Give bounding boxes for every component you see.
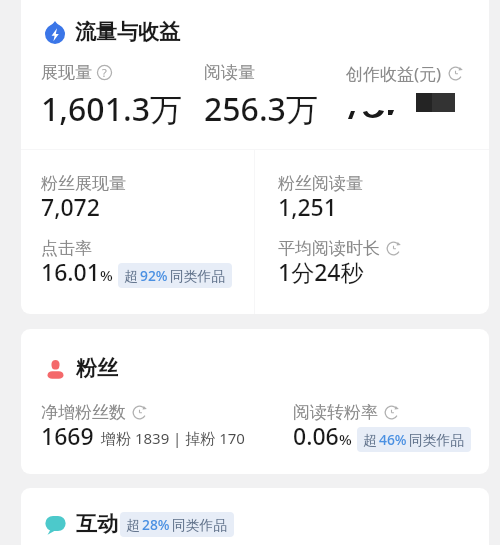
staticText: 超 28% 同类作品 xyxy=(126,515,228,534)
staticText: 净增粉丝数 xyxy=(41,402,126,423)
staticText: 超 92% 同类作品 xyxy=(124,266,226,285)
staticText: 互动 xyxy=(76,511,118,537)
button[interactable]: 超 28% 同类作品 xyxy=(120,512,234,537)
other: 刷新 xyxy=(384,405,399,420)
staticText: 0.06 xyxy=(293,420,339,451)
staticText: 超 46% 同类作品 xyxy=(363,430,465,449)
staticText: 7,072 xyxy=(41,191,100,222)
staticText: ? xyxy=(102,65,107,80)
staticText: 1,601.3万 xyxy=(41,87,182,131)
staticText: 阅读转粉率 xyxy=(293,402,378,423)
staticText: 展现量 xyxy=(41,62,92,83)
button[interactable]: 超 46% 同类作品 xyxy=(357,427,471,452)
staticText: 流量与收益 xyxy=(75,19,180,45)
staticText: 阅读量 xyxy=(204,62,255,83)
staticText: 平均阅读时长 xyxy=(278,238,380,259)
staticText: 1分24秒 xyxy=(278,256,364,287)
other: 刷新 xyxy=(386,241,401,256)
other: 粉丝 xyxy=(45,357,66,380)
staticText: 16.01 xyxy=(41,256,100,287)
staticText: % xyxy=(100,265,113,285)
staticText: 点击率 xyxy=(41,238,92,259)
staticText: 创作收益(元) xyxy=(346,62,442,85)
staticText: 增粉 1839 | 掉粉 170 xyxy=(101,428,245,448)
other: 互动 xyxy=(45,514,66,535)
staticText: 1669 xyxy=(41,420,94,451)
staticText: 粉丝 xyxy=(76,355,118,381)
other: 刷新 xyxy=(448,66,463,81)
other: 流量与收益 xyxy=(45,21,65,44)
staticText: 1,251 xyxy=(278,191,337,222)
button[interactable]: 超 92% 同类作品 xyxy=(118,263,232,288)
staticText: 粉丝展现量 xyxy=(41,173,126,194)
other: 说明 xyxy=(97,65,112,80)
staticText: % xyxy=(339,429,352,449)
staticText: 粉丝阅读量 xyxy=(278,173,363,194)
staticText: 256.3万 xyxy=(204,87,318,131)
other: 刷新 xyxy=(132,405,147,420)
